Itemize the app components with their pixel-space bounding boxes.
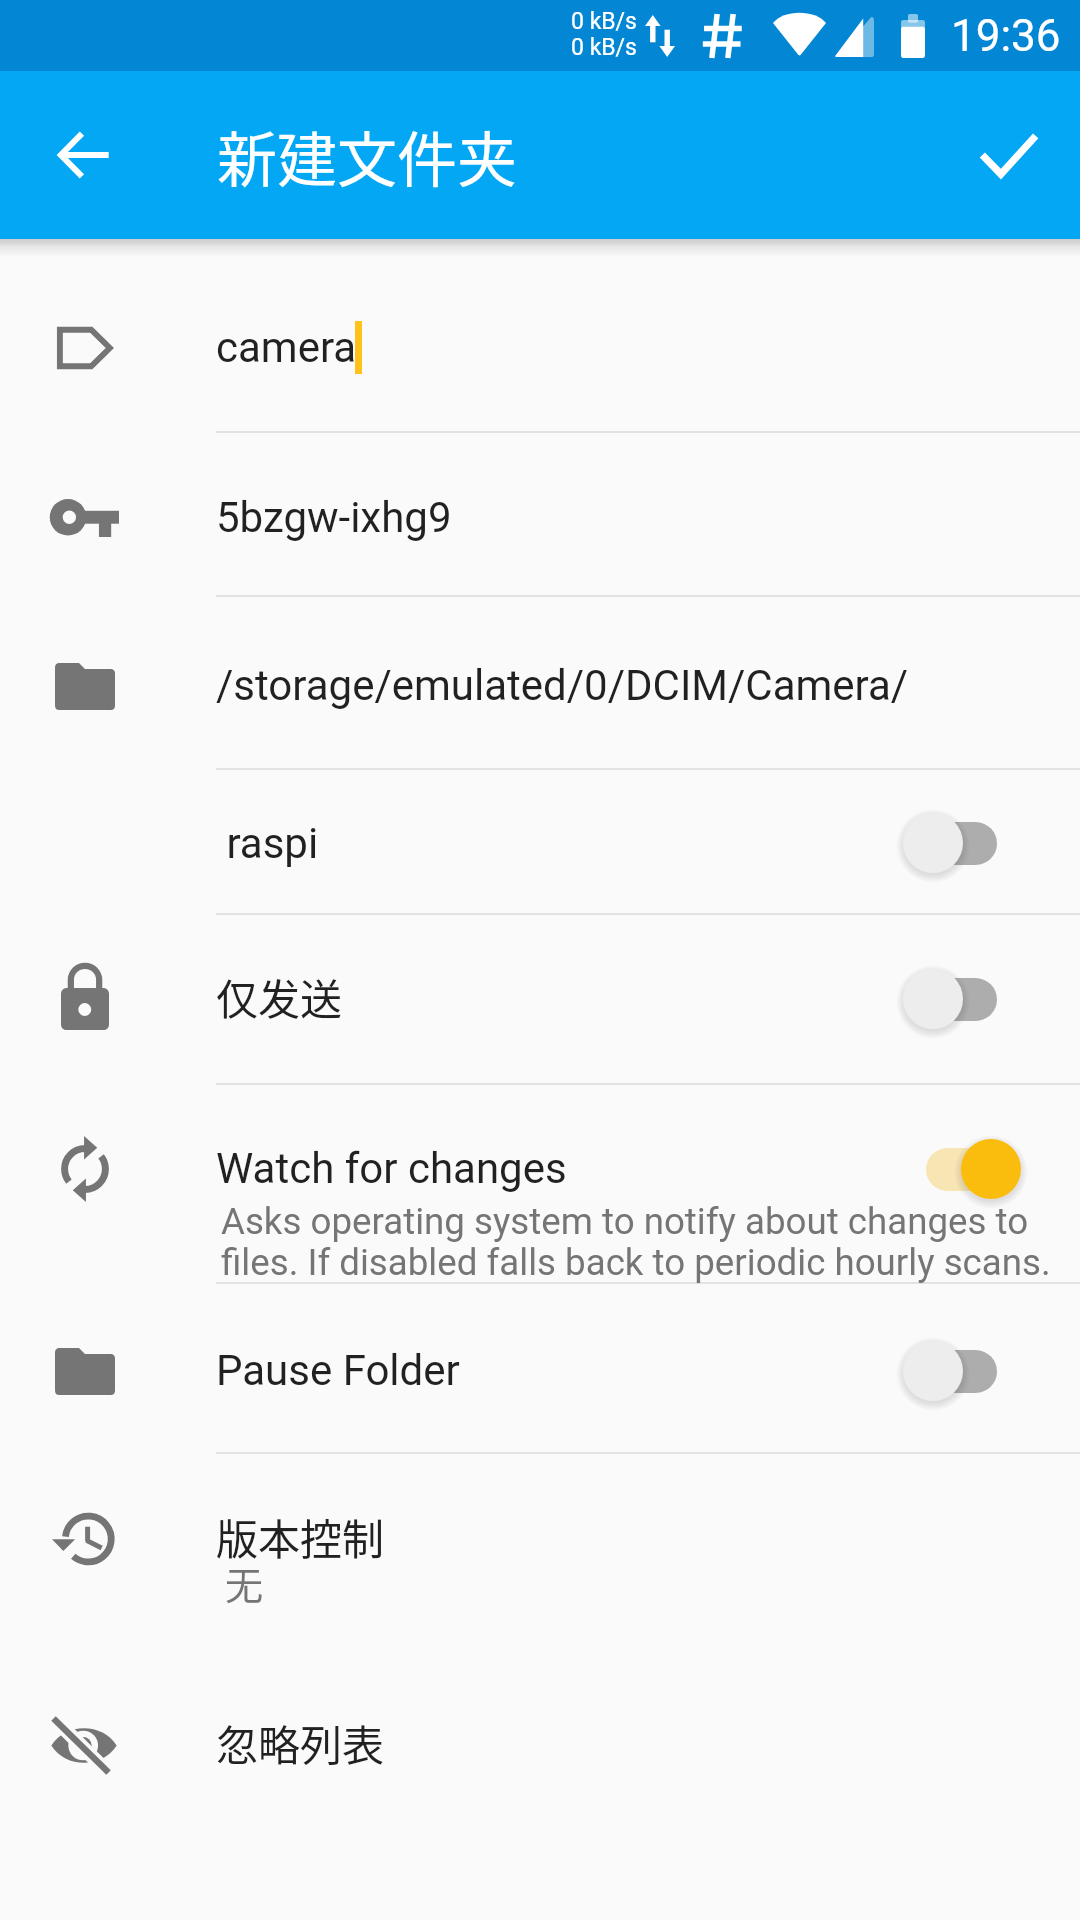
- button[interactable]: Pause Folder toggle, off: [889, 1327, 977, 1415]
- button[interactable]: Watch for changes: [0, 1083, 1080, 1282]
- staticText: 无: [225, 1555, 264, 1610]
- staticText: 0 kB/s: [571, 34, 637, 61]
- staticText: Asks operating system to notify about ch…: [221, 1200, 1071, 1284]
- staticText: 5bzgw-ixhg9: [216, 493, 452, 542]
- staticText: camera: [216, 323, 357, 372]
- staticText: 忽略列表: [216, 1712, 385, 1773]
- staticText: /storage/emulated/0/DCIM/Camera/: [216, 661, 909, 710]
- staticText: 仅发送: [216, 966, 343, 1027]
- button[interactable]: /storage/emulated/0/DCIM/Camera/: [0, 595, 1080, 768]
- button[interactable]: 5bzgw-ixhg9: [0, 431, 1080, 595]
- button[interactable]: Pause Folder: [0, 1282, 1080, 1452]
- staticText: 版本控制: [216, 1506, 385, 1567]
- button[interactable]: 版本控制: [0, 1452, 1080, 1660]
- staticText: raspi: [216, 819, 319, 868]
- button[interactable]: 仅发送: [0, 913, 1080, 1083]
- staticText: Pause Folder: [216, 1346, 460, 1395]
- button[interactable]: Save: [954, 100, 1064, 210]
- button[interactable]: Watch for changes toggle, on: [947, 1125, 1035, 1213]
- button[interactable]: camera: [0, 239, 1080, 431]
- staticText: 19:36: [951, 10, 1061, 62]
- button[interactable]: raspi toggle, off: [889, 799, 977, 887]
- button[interactable]: 忽略列表: [0, 1660, 1080, 1830]
- button[interactable]: 仅发送 toggle, off: [889, 955, 977, 1043]
- button[interactable]: raspi: [0, 768, 1080, 913]
- staticText: 新建文件夹: [217, 112, 517, 199]
- staticText: 0 kB/s: [571, 8, 637, 35]
- button[interactable]: Back: [28, 99, 140, 211]
- staticText: Watch for changes: [216, 1144, 567, 1193]
